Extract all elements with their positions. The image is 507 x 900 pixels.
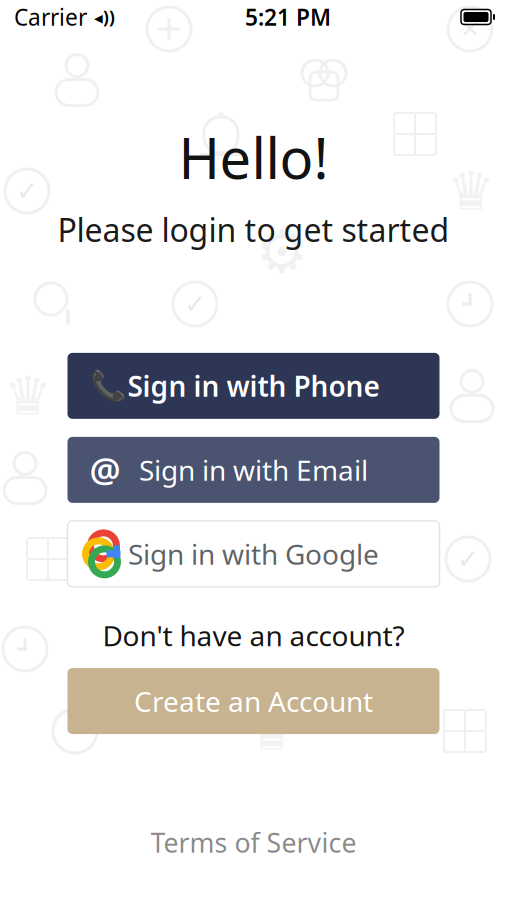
staticText: ✓: [184, 289, 206, 319]
button[interactable]: Sign in with Email: [67, 437, 439, 503]
staticText: Create an Account: [134, 682, 373, 720]
staticText: ⚙: [255, 219, 308, 285]
staticText: Sign in with Phone: [127, 367, 379, 404]
staticText: ♛: [4, 366, 52, 426]
staticText: Sign in with Email: [139, 451, 368, 488]
staticText: @: [89, 447, 120, 493]
button[interactable]: Terms of Service: [134, 817, 372, 868]
staticText: Carrier: [14, 2, 87, 32]
staticText: Hello!: [178, 120, 328, 194]
staticText: 📞: [89, 369, 126, 403]
staticText: ◂)): [94, 5, 115, 28]
staticText: Don't have an account?: [102, 617, 404, 654]
staticText: ♛: [447, 161, 495, 221]
button[interactable]: Sign in with Google: [67, 521, 439, 587]
button[interactable]: Sign in with Phone: [67, 353, 439, 419]
staticText: Sign in with Google: [128, 535, 379, 572]
staticText: Terms of Service: [150, 825, 356, 860]
staticText: ✓: [457, 544, 479, 574]
staticText: ✓: [16, 176, 38, 206]
staticText: ♛: [248, 701, 296, 761]
staticText: ✕: [460, 15, 480, 43]
staticText: Please login to get started: [57, 208, 449, 251]
button[interactable]: Create an Account: [67, 668, 439, 734]
staticText: 5:21 PM: [245, 2, 331, 32]
